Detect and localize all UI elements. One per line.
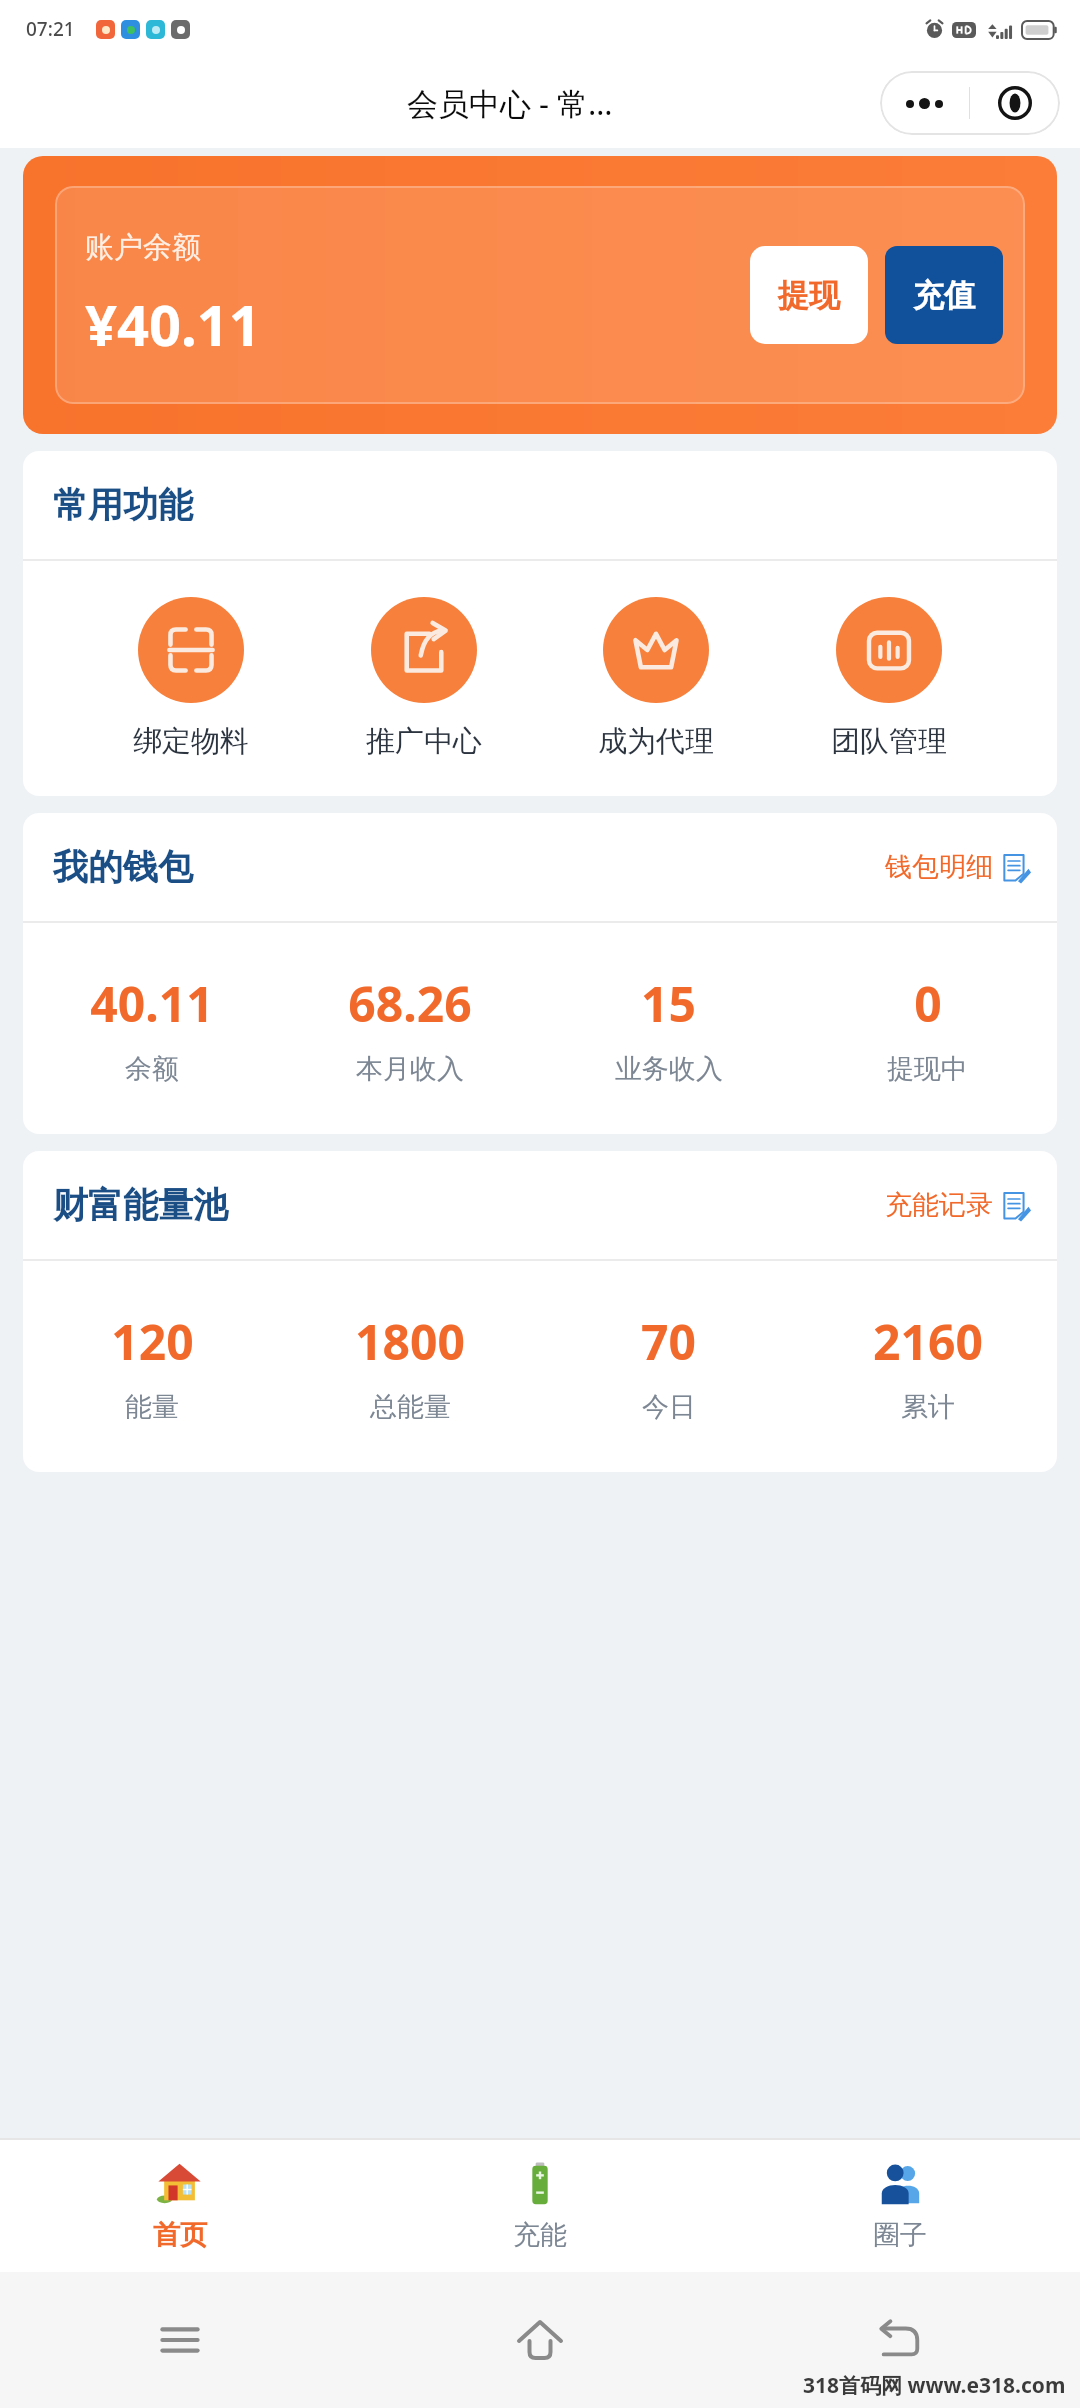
staticText: 常用功能 (53, 483, 193, 527)
button[interactable]: 15 (539, 971, 798, 1086)
button[interactable]: 圈子 (720, 2140, 1080, 2272)
staticText: 团队管理 (831, 723, 947, 760)
staticText: ¥40.11 (85, 286, 261, 362)
button[interactable]: 0 (798, 971, 1057, 1086)
staticText: 会员中心 - 常… (407, 82, 613, 124)
button[interactable]: Home (360, 2272, 720, 2408)
button[interactable]: Become agent (592, 597, 720, 760)
staticText: 圈子 (873, 2218, 927, 2252)
staticText: 账户余额 (85, 229, 201, 266)
staticText: 0 (914, 971, 942, 1036)
other: Promotion center (371, 597, 477, 703)
button[interactable]: 2160 (798, 1309, 1057, 1424)
button[interactable]: 70 (539, 1309, 798, 1424)
button[interactable]: Close mini program (970, 71, 1060, 135)
staticText: 业务收入 (615, 1052, 723, 1086)
button[interactable]: 提现 (750, 246, 868, 344)
staticText: 07:21 (26, 16, 75, 42)
staticText: 累计 (901, 1390, 955, 1424)
staticText: 充能记录 (885, 1188, 993, 1222)
staticText: 钱包明细 (885, 850, 993, 884)
staticText: 本月收入 (356, 1052, 464, 1086)
button[interactable]: 68.26 (281, 971, 539, 1086)
staticText: 总能量 (370, 1390, 451, 1424)
staticText: 推广中心 (366, 723, 482, 760)
staticText: 提现中 (887, 1052, 968, 1086)
button[interactable]: 40.11 (23, 971, 281, 1086)
button[interactable]: 充能记录 (885, 1188, 1031, 1222)
button[interactable]: More options (880, 71, 969, 135)
staticText: 财富能量池 (53, 1183, 228, 1227)
button[interactable]: 充值 (885, 246, 1003, 344)
staticText: 70 (641, 1309, 696, 1374)
button[interactable]: Bind material (127, 597, 255, 760)
button[interactable]: Team management (825, 597, 953, 760)
other: Team management (836, 597, 942, 703)
button[interactable]: 首页 (0, 2140, 360, 2272)
staticText: 40.11 (90, 971, 214, 1036)
staticText: 68.26 (348, 971, 472, 1036)
staticText: 提现 (778, 276, 840, 315)
button[interactable]: Back (720, 2272, 1080, 2408)
other: Become agent (603, 597, 709, 703)
button[interactable]: Promotion center (360, 597, 488, 760)
button[interactable]: 120 (23, 1309, 281, 1424)
staticText: 1800 (355, 1309, 465, 1374)
staticText: 318首码网 www.e318.com (803, 2371, 1066, 2400)
staticText: 15 (641, 971, 696, 1036)
button[interactable]: 钱包明细 (885, 850, 1031, 884)
staticText: 充能 (513, 2218, 567, 2252)
staticText: 充值 (913, 276, 975, 315)
staticText: 120 (111, 1309, 194, 1374)
other: Bind material (138, 597, 244, 703)
button[interactable]: Recent apps (0, 2272, 360, 2408)
staticText: 我的钱包 (53, 845, 193, 889)
staticText: 余额 (125, 1052, 179, 1086)
staticText: 能量 (125, 1390, 179, 1424)
staticText: 绑定物料 (133, 723, 249, 760)
staticText: 今日 (642, 1390, 696, 1424)
staticText: 成为代理 (598, 723, 714, 760)
button[interactable]: 充能 (360, 2140, 720, 2272)
staticText: 首页 (153, 2218, 207, 2252)
staticText: 2160 (873, 1309, 983, 1374)
button[interactable]: 1800 (281, 1309, 539, 1424)
